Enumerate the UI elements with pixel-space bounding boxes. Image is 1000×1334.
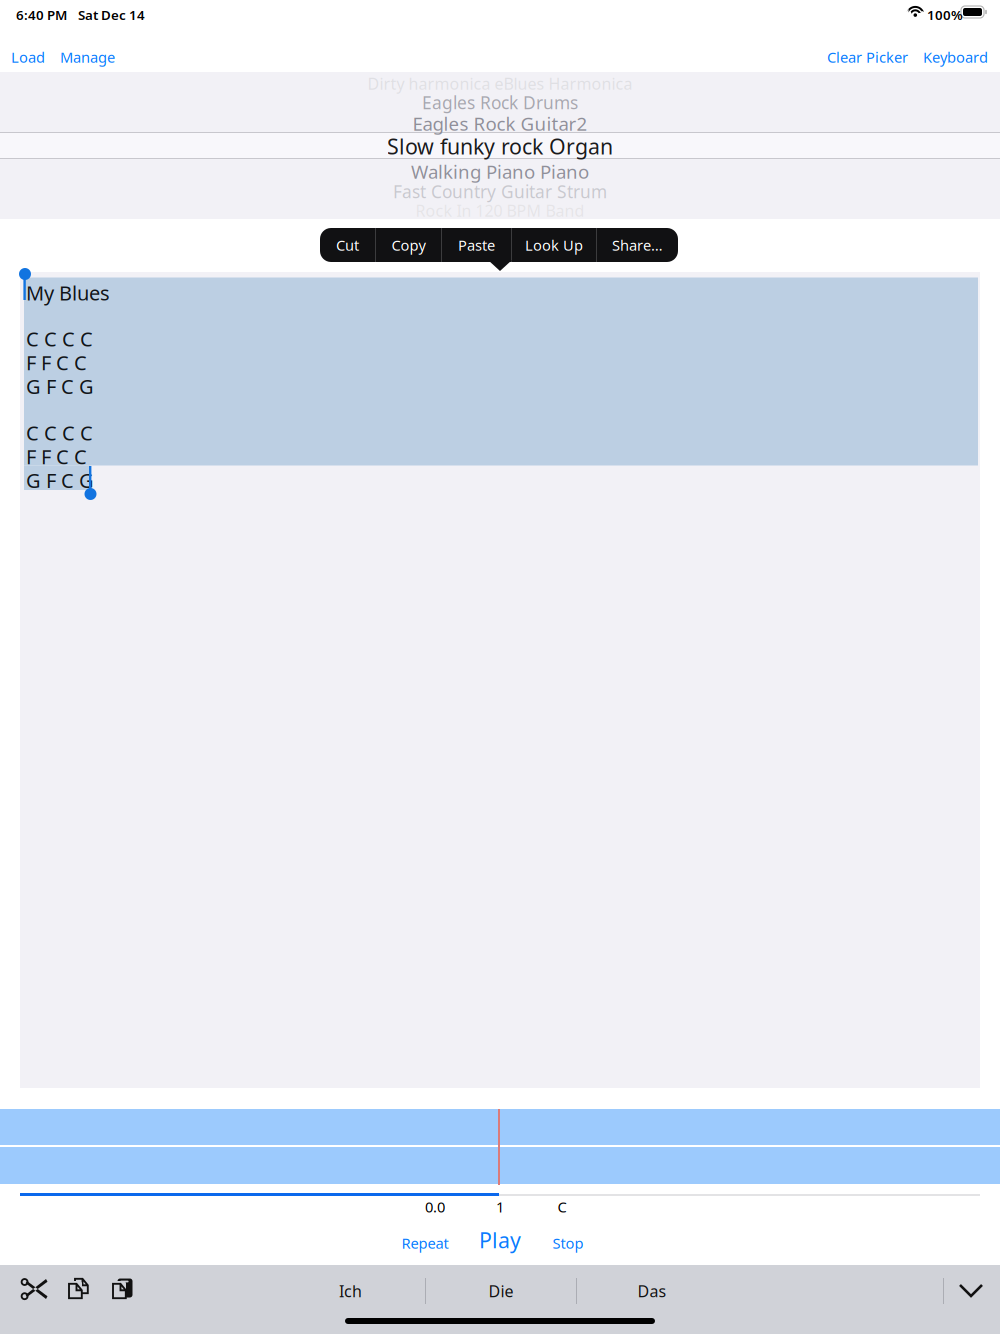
staticText: Copy <box>391 235 425 255</box>
staticText: My Blues <box>26 279 110 306</box>
staticText: Die <box>488 1280 513 1302</box>
staticText: Walking Piano Piano <box>411 159 589 184</box>
button[interactable]: Look Up <box>512 228 596 262</box>
staticText: Das <box>637 1280 666 1302</box>
staticText: Play <box>479 1226 521 1254</box>
button[interactable]: Paste <box>111 1276 133 1301</box>
button[interactable]: Cut <box>21 1278 48 1301</box>
staticText: Ich <box>339 1280 362 1302</box>
staticText: Manage <box>60 47 115 67</box>
staticText: Fast Country Guitar Strum <box>393 180 607 203</box>
staticText: Sat Dec 14 <box>78 6 145 24</box>
button[interactable]: Repeat <box>387 1229 463 1257</box>
button[interactable]: Load <box>6 40 50 74</box>
button[interactable]: Hide keyboard <box>944 1269 998 1313</box>
staticText: G F C G <box>26 467 94 493</box>
button[interactable]: Copy <box>376 228 441 262</box>
button[interactable]: Die <box>427 1269 575 1313</box>
staticText: F F C C <box>26 349 87 376</box>
button[interactable]: Manage <box>55 40 120 74</box>
button[interactable]: Copy <box>67 1276 89 1301</box>
staticText: 0.0 <box>425 1197 445 1216</box>
staticText: Look Up <box>525 235 583 255</box>
staticText: C <box>557 1197 566 1216</box>
staticText: Share… <box>612 235 663 255</box>
button[interactable]: Share… <box>597 228 678 262</box>
button[interactable]: Paste <box>442 228 511 262</box>
staticText: Repeat <box>401 1233 448 1253</box>
button[interactable]: Clear Picker <box>822 40 913 74</box>
button[interactable]: Ich <box>278 1269 423 1313</box>
staticText: Slow funky rock Organ <box>387 132 613 160</box>
staticText: Stop <box>552 1233 583 1253</box>
staticText: 1 <box>496 1197 504 1216</box>
staticText: F F C C <box>26 443 87 470</box>
staticText: C C C C <box>26 325 93 352</box>
staticText: Eagles Rock Drums <box>422 91 578 114</box>
staticText: Dirty harmonica eBlues Harmonica <box>367 73 632 94</box>
button[interactable]: Stop <box>539 1229 597 1257</box>
staticText: Keyboard <box>923 47 988 67</box>
staticText: 6:40 PM <box>16 6 67 24</box>
staticText: Load <box>11 47 45 67</box>
staticText: Clear Picker <box>827 47 908 67</box>
staticText: 100% <box>927 6 963 24</box>
staticText: Paste <box>458 235 495 255</box>
button[interactable]: Cut <box>320 228 375 262</box>
button[interactable]: Play <box>469 1223 531 1257</box>
button[interactable]: Keyboard <box>918 40 993 74</box>
staticText: Rock In 120 BPM Band <box>415 200 584 221</box>
staticText: Cut <box>336 235 359 255</box>
staticText: Eagles Rock Guitar2 <box>412 111 587 136</box>
button[interactable]: Das <box>578 1269 726 1313</box>
staticText: C C C C <box>26 419 93 446</box>
staticText: G F C G <box>26 373 94 399</box>
